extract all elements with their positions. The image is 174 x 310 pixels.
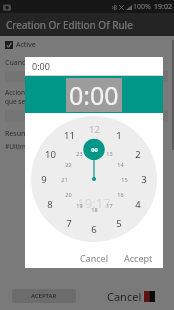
staticText: 16: [117, 191, 124, 198]
button[interactable]: ACEPTAR: [0, 282, 87, 310]
staticText: 19:02: [154, 2, 172, 12]
button[interactable]: 19:17: [31, 116, 157, 242]
button[interactable]: Accept: [119, 250, 158, 266]
staticText: #Ultimo: [5, 142, 30, 151]
staticText: ACEPTAR: [31, 292, 57, 300]
staticText: 4: [135, 198, 141, 211]
other: Bluetooth: [112, 5, 117, 10]
staticText: 0:00: [32, 60, 50, 72]
other: Recording: [144, 291, 155, 302]
staticText: 9: [41, 173, 47, 186]
staticText: 13: [106, 150, 113, 157]
staticText: 18: [91, 206, 98, 213]
staticText: que se ejecutan: [5, 97, 53, 106]
staticText: 8: [47, 198, 53, 211]
staticText: Cuando: [5, 58, 31, 68]
staticText: 10: [45, 148, 56, 161]
staticText: 100%: [133, 2, 151, 12]
button[interactable]: Cancel: [87, 282, 174, 310]
staticText: Cancel: [107, 289, 142, 304]
staticText: 3: [141, 173, 147, 186]
staticText: 12: [89, 123, 100, 136]
staticText: 21: [61, 176, 68, 183]
staticText: Creation Or Edition Of Rule: [6, 18, 133, 32]
staticText: Cancel: [80, 252, 109, 264]
staticText: 19: [76, 202, 83, 209]
staticText: 6: [91, 223, 97, 236]
staticText: 15: [121, 176, 128, 183]
staticText: 1: [116, 129, 122, 142]
staticText: 20: [65, 191, 72, 198]
staticText: 14: [117, 161, 124, 168]
staticText: 17: [106, 202, 113, 209]
staticText: Active: [16, 40, 36, 50]
button[interactable]: Active: [5, 40, 36, 50]
staticText: 0:00: [69, 78, 119, 112]
staticText: 5: [116, 217, 122, 230]
staticText: Acciones a realizar: [5, 88, 62, 97]
button[interactable]: Cancel: [75, 250, 114, 266]
staticText: 00: [91, 146, 98, 153]
staticText: Resumen: [5, 129, 36, 139]
staticText: 22: [65, 161, 72, 168]
staticText: 7: [66, 217, 72, 230]
staticText: 2: [135, 148, 141, 161]
staticText: Accept: [124, 252, 153, 264]
staticText: 11: [64, 129, 75, 142]
staticText: 19:17: [77, 194, 111, 212]
staticText: 23: [76, 150, 83, 157]
